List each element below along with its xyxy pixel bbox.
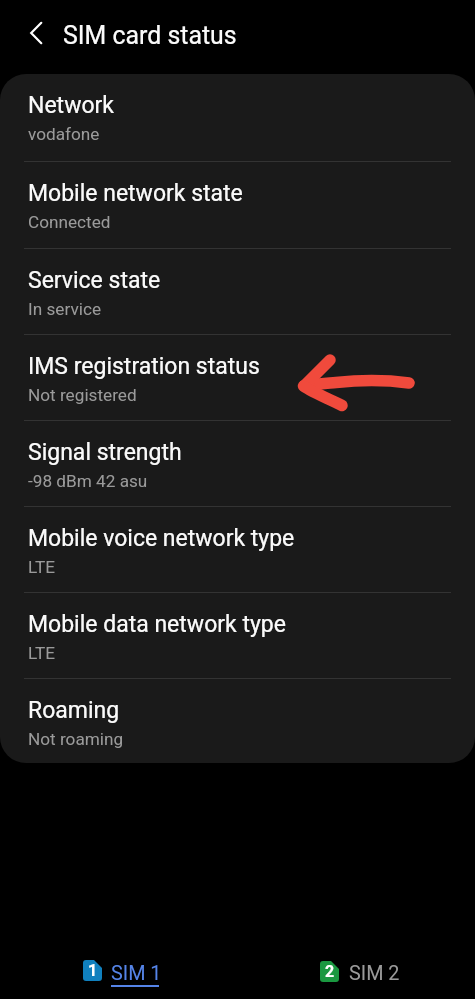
staticText: Signal strength (28, 439, 182, 466)
staticText: IMS registration status (28, 353, 260, 380)
staticText: Roaming (28, 697, 120, 724)
button[interactable]: Mobile voice network type (0, 506, 475, 592)
staticText: 2 (325, 962, 335, 981)
staticText: vodafone (28, 124, 100, 144)
button[interactable]: 2 (305, 950, 413, 999)
button[interactable]: Roaming (0, 678, 475, 763)
button[interactable]: IMS registration status (0, 334, 475, 420)
staticText: Connected (28, 212, 111, 232)
staticText: Network (28, 92, 114, 119)
staticText: Mobile data network type (28, 611, 286, 638)
button[interactable]: 1 (68, 950, 176, 999)
button[interactable]: Back (17, 14, 55, 52)
button[interactable]: Service state (0, 248, 475, 334)
staticText: Mobile voice network type (28, 525, 295, 552)
staticText: LTE (28, 557, 55, 577)
staticText: Mobile network state (28, 180, 243, 207)
staticText: Not registered (28, 385, 137, 405)
staticText: In service (28, 299, 102, 319)
staticText: Service state (28, 267, 161, 294)
staticText: LTE (28, 643, 55, 663)
button[interactable]: Mobile data network type (0, 592, 475, 678)
staticText: SIM 2 (349, 962, 400, 985)
staticText: SIM card status (63, 21, 237, 50)
button[interactable]: Mobile network state (0, 161, 475, 247)
staticText: Not roaming (28, 729, 124, 749)
button[interactable]: Signal strength (0, 420, 475, 506)
staticText: -98 dBm 42 asu (28, 471, 148, 491)
button[interactable]: Network (0, 74, 475, 161)
staticText: 1 (88, 961, 98, 980)
staticText: SIM 1 (111, 962, 162, 985)
